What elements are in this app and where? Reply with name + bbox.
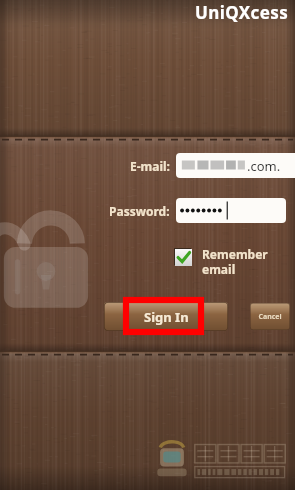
staticText: Password:	[109, 203, 170, 219]
button[interactable]: UniQXcess	[195, 1, 289, 24]
button[interactable]: Sign In	[104, 302, 228, 331]
staticText: UniQXcess	[195, 1, 289, 24]
staticText: E-mail:	[130, 158, 170, 174]
staticText: Cancel	[258, 312, 282, 322]
button[interactable]	[176, 198, 286, 223]
staticText: Sign In	[144, 308, 189, 326]
staticText: Remember	[202, 246, 268, 262]
button[interactable]: .com.	[176, 153, 295, 178]
button[interactable]: Cancel	[250, 303, 290, 330]
button[interactable]: Remember	[172, 246, 282, 282]
staticText: .com.	[247, 157, 281, 175]
staticText: email	[202, 261, 236, 277]
